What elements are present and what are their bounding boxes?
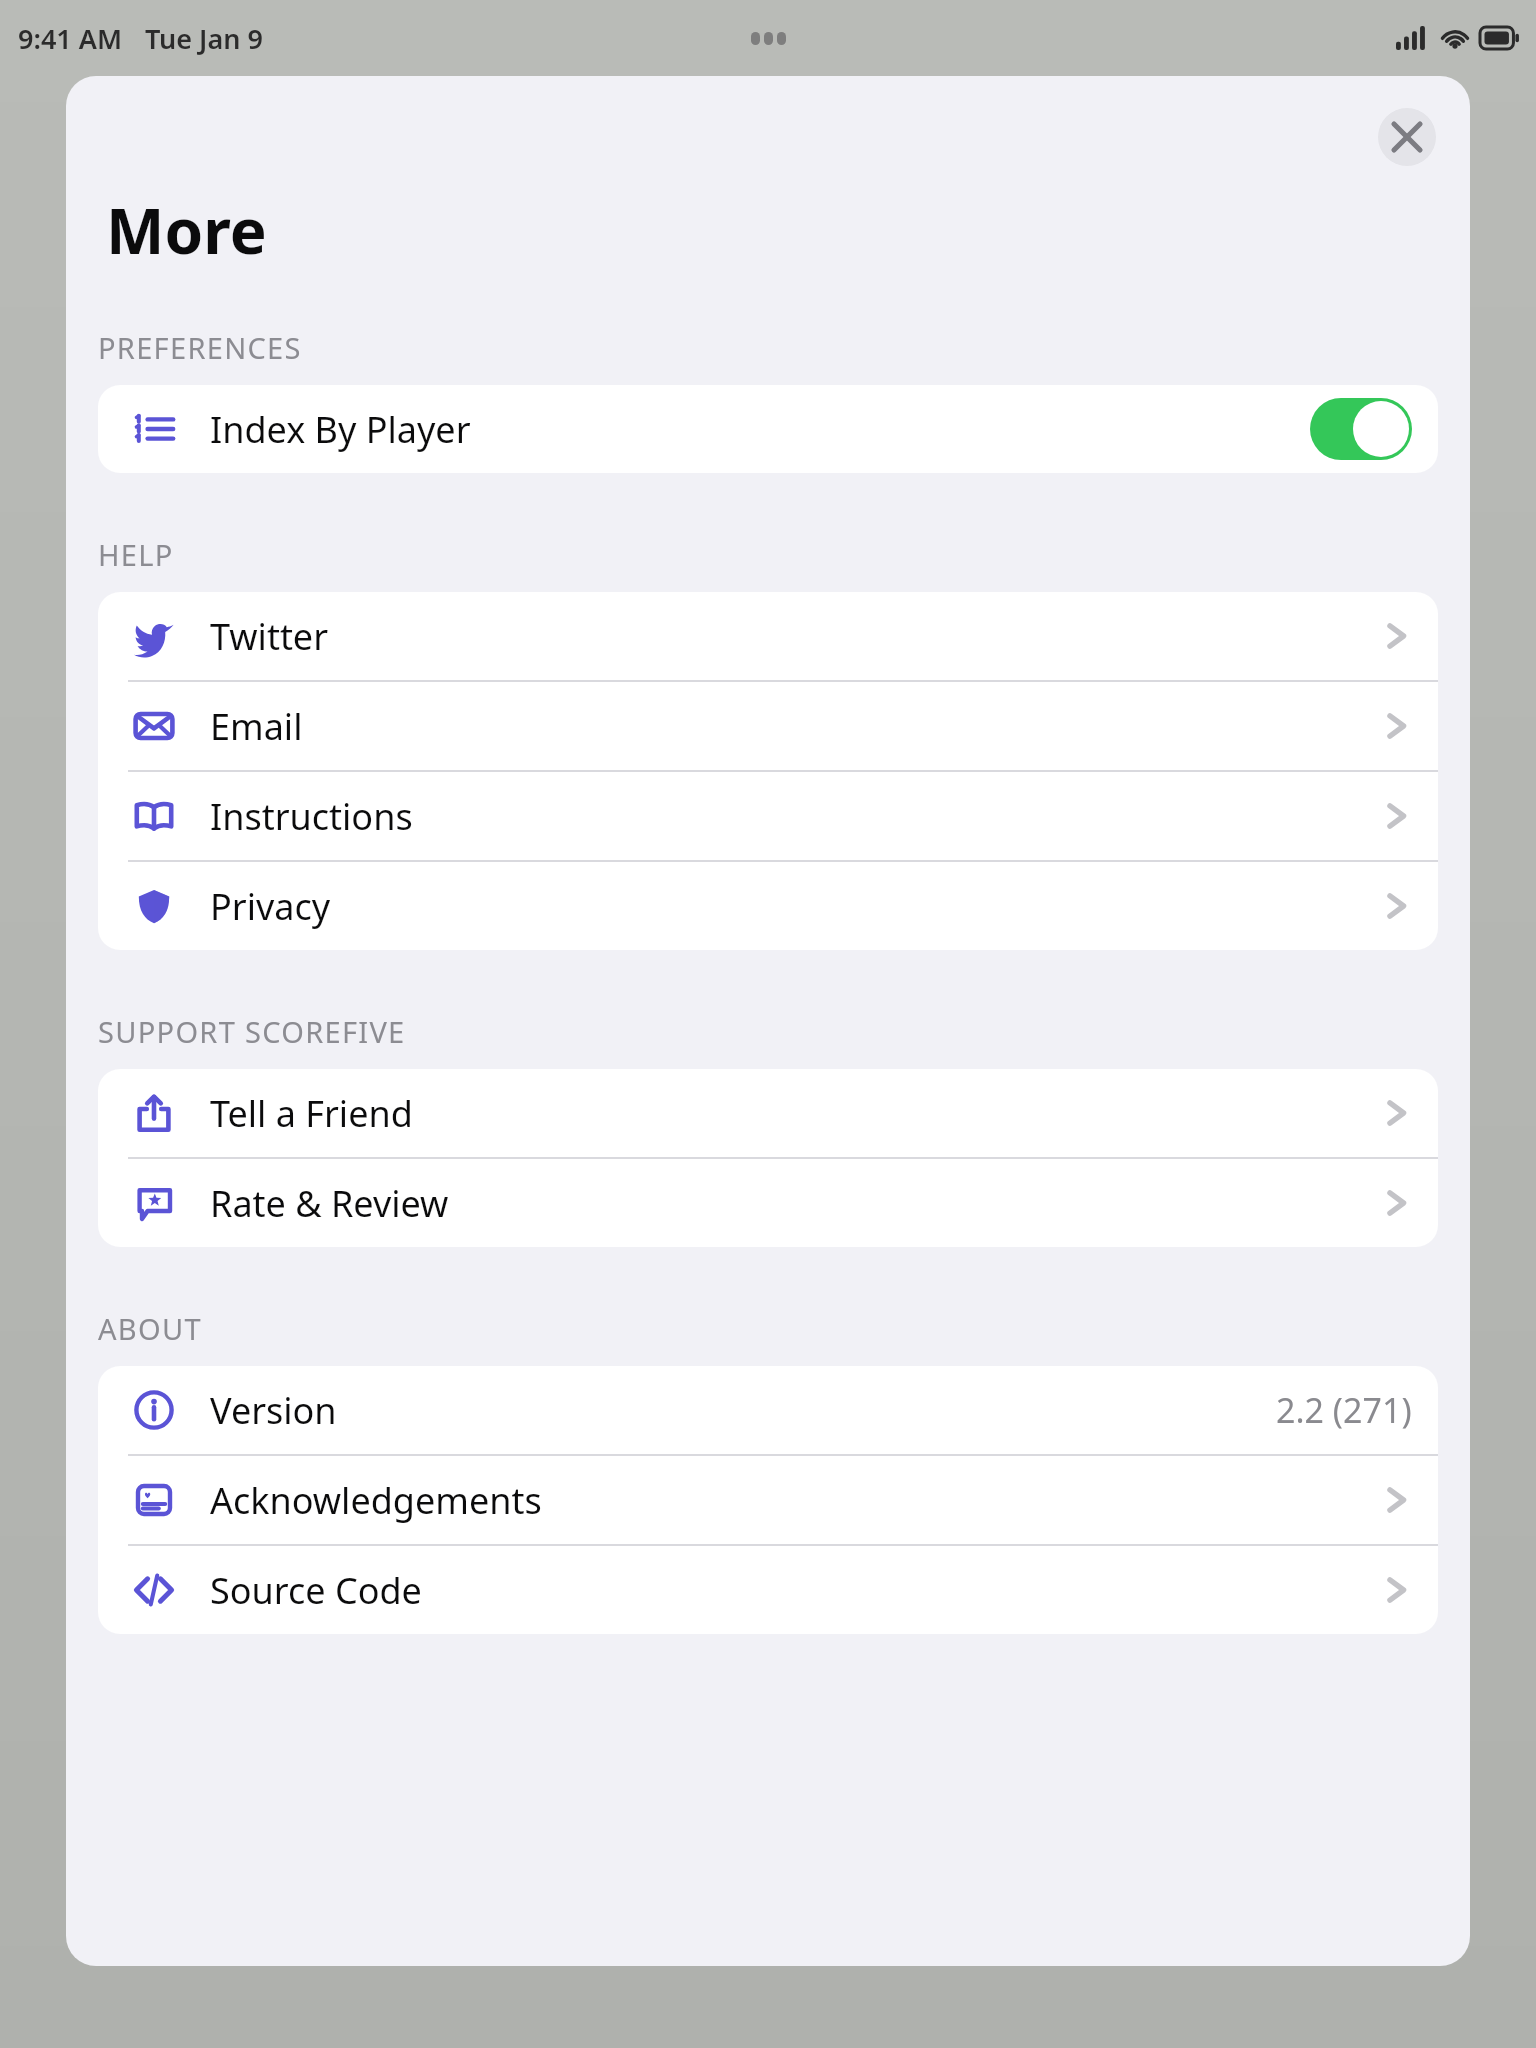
staticText: 2.2 (271) <box>1276 1387 1412 1433</box>
button[interactable]: Version <box>98 1366 1438 1456</box>
button[interactable]: Source Code <box>98 1546 1438 1634</box>
button[interactable]: Close <box>1378 108 1436 166</box>
staticText: 9:41 AM <box>18 20 123 57</box>
staticText: Tue Jan 9 <box>145 20 263 57</box>
button[interactable]: Index By Player toggle <box>1310 398 1412 460</box>
button[interactable]: Tell a Friend <box>98 1069 1438 1159</box>
staticText: PREFERENCES <box>98 328 302 367</box>
button[interactable]: Acknowledgements <box>98 1456 1438 1546</box>
staticText: Tell a Friend <box>210 1089 413 1138</box>
staticText: Email <box>210 702 303 751</box>
staticText: ABOUT <box>98 1309 202 1348</box>
button[interactable]: Rate & Review <box>98 1159 1438 1247</box>
button[interactable]: Index By Player <box>98 385 1438 473</box>
staticText: Privacy <box>210 882 331 931</box>
button[interactable]: Instructions <box>98 772 1438 862</box>
staticText: Rate & Review <box>210 1179 449 1228</box>
staticText: Version <box>210 1386 337 1435</box>
staticText: Index By Player <box>210 405 471 454</box>
staticText: Instructions <box>210 792 413 841</box>
staticText: Source Code <box>210 1566 422 1615</box>
staticText: SUPPORT SCOREFIVE <box>98 1012 406 1051</box>
button[interactable]: Privacy <box>98 862 1438 950</box>
staticText: Acknowledgements <box>210 1476 542 1525</box>
staticText: HELP <box>98 535 174 574</box>
staticText: More <box>106 188 267 272</box>
button[interactable]: Email <box>98 682 1438 772</box>
staticText: Twitter <box>210 612 329 661</box>
button[interactable]: Twitter <box>98 592 1438 682</box>
